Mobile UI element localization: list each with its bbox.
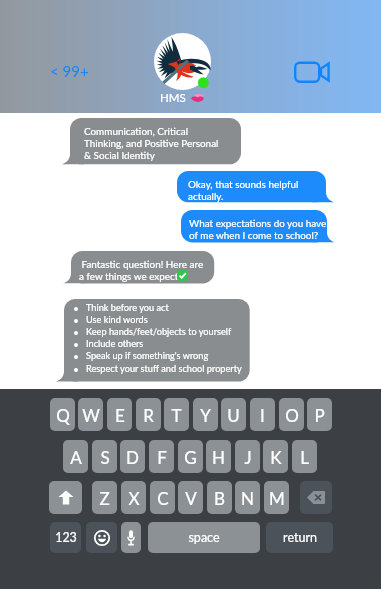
- button[interactable]: Think before you act: [55, 299, 250, 387]
- button[interactable]: O: [279, 398, 304, 431]
- staticText: HMS: [160, 91, 186, 105]
- button[interactable]: S: [92, 440, 117, 473]
- staticText: return: [283, 530, 317, 545]
- staticText: W: [82, 405, 100, 425]
- staticText: space: [188, 530, 220, 545]
- staticText: 123: [55, 530, 77, 545]
- button[interactable]: Okay, that sounds helpful actually.: [177, 171, 335, 207]
- staticText: C: [157, 488, 169, 508]
- button[interactable]: Video call: [294, 59, 332, 83]
- button[interactable]: return: [266, 522, 333, 553]
- button[interactable]: J: [235, 440, 260, 473]
- button[interactable]: 123: [50, 522, 81, 553]
- button[interactable]: R: [136, 398, 161, 431]
- staticText: Communication, Critical Thinking, and Po…: [84, 125, 219, 161]
- button[interactable]: K: [263, 440, 288, 473]
- staticText: J: [244, 447, 252, 467]
- button[interactable]: Emoji: [86, 522, 117, 553]
- staticText: U: [227, 405, 240, 425]
- staticText: Respect your stuff and school property: [86, 363, 242, 374]
- staticText: R: [143, 405, 154, 425]
- button[interactable]: Communication, Critical Thinking, and Po…: [61, 118, 241, 169]
- staticText: O: [285, 405, 299, 425]
- staticText: M: [269, 488, 285, 508]
- button[interactable]: Shift: [49, 481, 82, 514]
- staticText: F: [157, 447, 167, 467]
- staticText: L: [300, 447, 309, 467]
- staticText: X: [128, 488, 140, 508]
- staticText: Q: [56, 405, 70, 425]
- staticText: A: [70, 447, 82, 467]
- button[interactable]: Dictate: [121, 522, 141, 553]
- button[interactable]: Back to conversations, 99+ unread: [44, 60, 94, 81]
- staticText: V: [185, 488, 197, 508]
- button[interactable]: E: [107, 398, 132, 431]
- button[interactable]: N: [235, 481, 260, 514]
- staticText: Think before you act: [86, 302, 169, 313]
- button[interactable]: B: [207, 481, 232, 514]
- button[interactable]: Q: [50, 398, 75, 431]
- button[interactable]: P: [307, 398, 332, 431]
- button[interactable]: C: [150, 481, 175, 514]
- button[interactable]: T: [164, 398, 189, 431]
- staticText: D: [126, 447, 139, 467]
- staticText: Use kind words: [86, 314, 148, 325]
- button[interactable]: L: [292, 440, 317, 473]
- staticText: Y: [200, 405, 211, 425]
- staticText: Keep hands/feet/objects to yourself: [86, 326, 232, 337]
- button[interactable]: Z: [92, 481, 117, 514]
- button[interactable]: space: [148, 522, 260, 553]
- staticText: Z: [99, 488, 110, 508]
- staticText: What expectations do you have of me when…: [189, 217, 327, 241]
- staticText: Fantastic question! Here are a few thing…: [79, 258, 204, 282]
- button[interactable]: M: [264, 481, 289, 514]
- button[interactable]: I: [250, 398, 275, 431]
- staticText: < 99+: [50, 62, 89, 80]
- button[interactable]: D: [120, 440, 145, 473]
- button[interactable]: Delete: [300, 481, 332, 514]
- staticText: P: [314, 405, 325, 425]
- staticText: K: [270, 447, 282, 467]
- button[interactable]: F: [149, 440, 174, 473]
- button[interactable]: U: [221, 398, 246, 431]
- staticText: E: [115, 405, 125, 425]
- button[interactable]: V: [178, 481, 203, 514]
- button[interactable]: A: [63, 440, 88, 473]
- staticText: G: [184, 447, 197, 467]
- staticText: Include others: [86, 338, 144, 349]
- button[interactable]: Y: [193, 398, 218, 431]
- button[interactable]: Contact avatar: [154, 33, 211, 90]
- button[interactable]: H: [206, 440, 231, 473]
- button[interactable]: G: [178, 440, 203, 473]
- button[interactable]: W: [78, 398, 103, 431]
- staticText: I: [260, 405, 265, 425]
- button[interactable]: X: [121, 481, 146, 514]
- staticText: Okay, that sounds helpful actually.: [188, 178, 299, 202]
- staticText: N: [241, 488, 254, 508]
- staticText: S: [100, 447, 110, 467]
- button[interactable]: Fantastic question! Here are a few thing…: [62, 251, 214, 288]
- staticText: T: [171, 405, 182, 425]
- staticText: H: [212, 447, 225, 467]
- staticText: B: [214, 488, 225, 508]
- button[interactable]: What expectations do you have of me when…: [181, 210, 336, 247]
- staticText: Speak up if something's wrong: [86, 350, 209, 361]
